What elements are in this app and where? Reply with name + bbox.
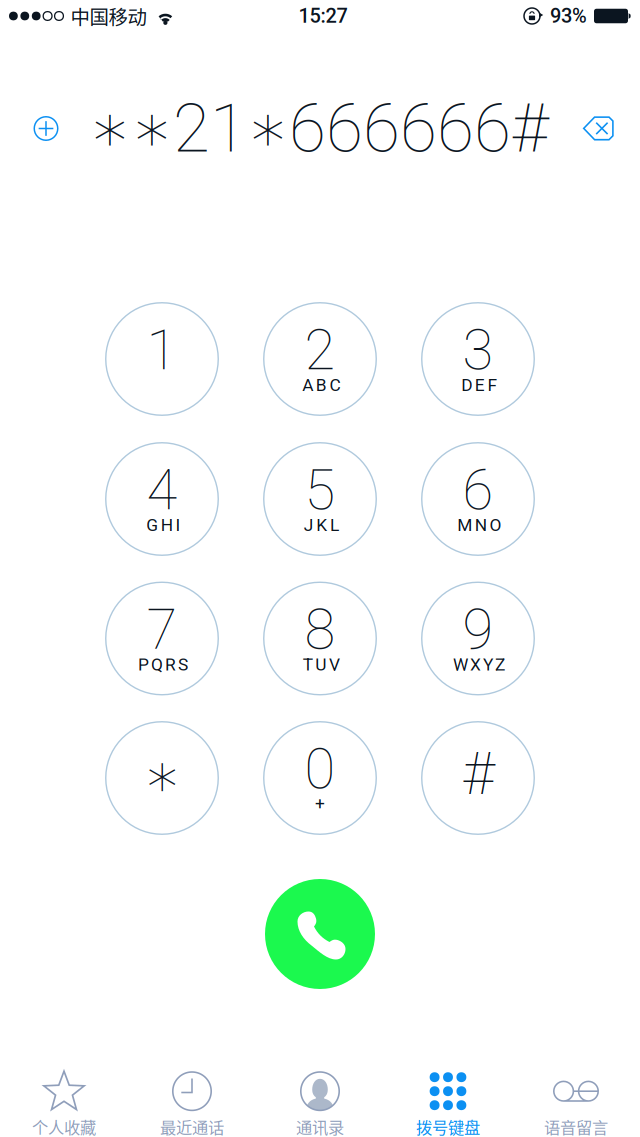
button[interactable]: 5 [264,443,376,555]
button[interactable]: 拨号键盘 [384,1055,512,1137]
button[interactable]: 3 [422,303,534,415]
staticText: ABC [302,375,340,395]
staticText: 8 [304,597,335,662]
staticText: 4 [146,457,177,523]
staticText: 1 [146,317,177,383]
button[interactable]: 个人收藏 [0,1055,128,1137]
button[interactable]: 0 [264,722,376,834]
staticText: DEF [461,375,497,395]
staticText: 中国移动 [70,2,146,30]
button[interactable]: 2 [264,303,376,415]
staticText: 2 [304,317,335,383]
button[interactable]: 语音留言 [512,1055,640,1137]
button[interactable]: # [422,722,534,834]
button[interactable]: 最近通话 [128,1055,256,1137]
staticText: 7 [146,597,177,662]
staticText: 9 [462,597,493,662]
staticText: 拨号键盘 [416,1115,480,1137]
staticText: 最近通话 [160,1115,224,1137]
staticText: GHI [146,515,180,535]
button[interactable]: 7 [106,582,218,695]
button[interactable]: Add Number [14,96,78,160]
staticText: 5 [304,457,335,523]
staticText: 6 [462,457,493,523]
button[interactable]: 6 [422,443,534,555]
button[interactable]: 9 [422,582,534,695]
staticText: WXYZ [453,654,505,675]
staticText: MNO [457,515,501,535]
button[interactable]: Delete [566,96,630,160]
staticText: 3 [462,317,493,383]
staticText: 语音留言 [544,1115,608,1137]
staticText: PQRS [138,654,188,675]
button[interactable]: 8 [264,582,376,695]
button[interactable]: ∗ [106,722,218,834]
staticText: TUV [303,654,340,675]
staticText: 通讯录 [296,1115,344,1137]
staticText: 93% [550,4,587,28]
button[interactable]: 1 [106,303,218,415]
staticText: + [315,793,325,813]
staticText: JKL [304,515,339,535]
staticText: ∗∗21∗666666# [89,89,548,168]
staticText: ∗ [143,739,181,811]
button[interactable]: 通讯录 [256,1055,384,1137]
button[interactable]: 4 [106,443,218,555]
button[interactable]: Call [265,879,375,989]
staticText: 15:27 [298,4,347,28]
staticText: 0 [304,736,335,802]
staticText: 个人收藏 [32,1115,96,1137]
staticText: # [462,740,494,808]
